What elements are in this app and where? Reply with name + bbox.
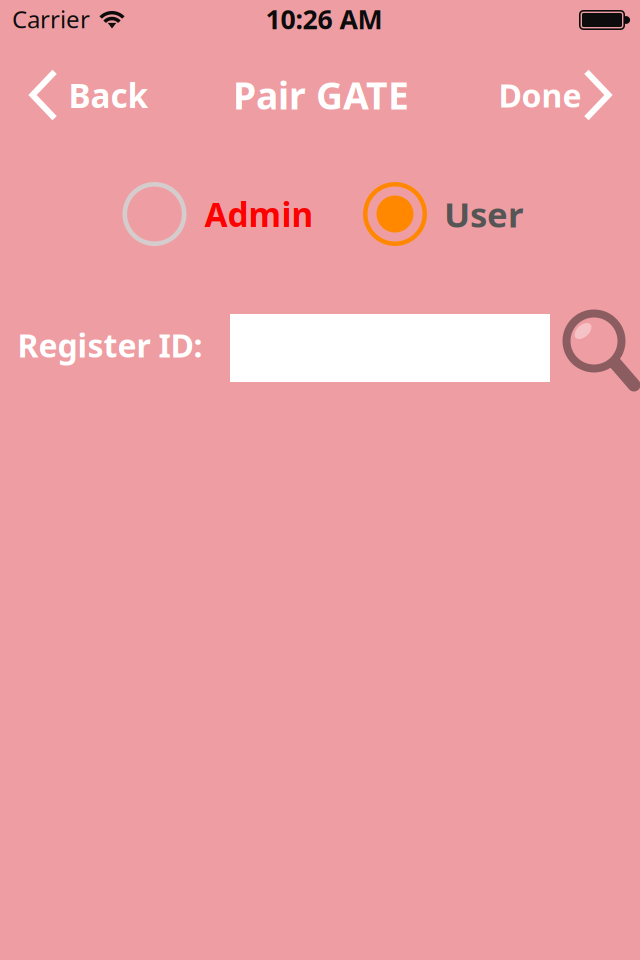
- staticText: User: [444, 191, 523, 237]
- button[interactable]: Admin: [122, 182, 313, 246]
- staticText: 10:26 AM: [265, 1, 382, 37]
- staticText: Carrier: [12, 3, 90, 35]
- staticText: Back: [68, 73, 148, 117]
- staticText: Register ID:: [17, 324, 202, 366]
- button[interactable]: User: [363, 182, 523, 246]
- staticText: Done: [498, 74, 581, 116]
- staticText: Admin: [204, 192, 313, 236]
- button[interactable]: Back: [0, 63, 162, 127]
- staticText: Pair GATE: [233, 70, 409, 120]
- button[interactable]: Search: [554, 301, 640, 389]
- button[interactable]: Done: [486, 63, 635, 127]
